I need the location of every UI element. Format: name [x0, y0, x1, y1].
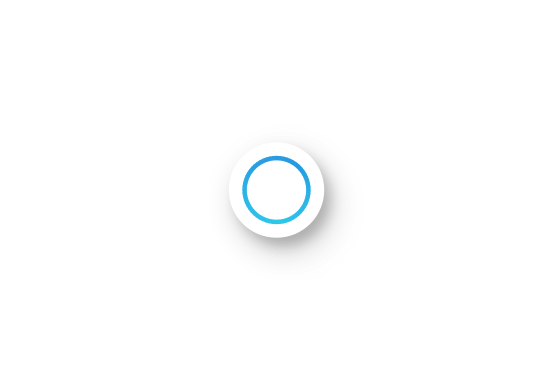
- button[interactable]: Loading: [229, 142, 324, 238]
